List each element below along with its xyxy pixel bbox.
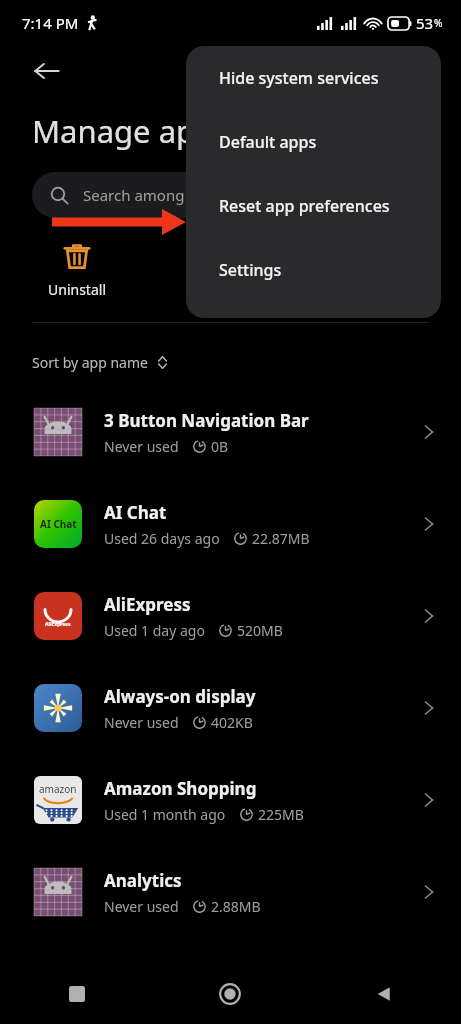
staticText: Never used xyxy=(104,713,179,732)
staticText: Default apps xyxy=(219,131,317,153)
button[interactable]: Reset app preferences xyxy=(186,174,441,238)
staticText: Settings xyxy=(219,259,282,281)
button[interactable]: Uninstall xyxy=(0,240,153,299)
staticText: AliExpress xyxy=(45,621,71,628)
staticText: Used 26 days ago xyxy=(104,529,220,548)
staticText: % xyxy=(434,16,443,30)
staticText: AliExpress xyxy=(104,593,191,616)
button[interactable]: 3 Button Navigation Bar xyxy=(0,386,461,478)
button[interactable]: Hide system services xyxy=(186,46,441,110)
staticText: 0B xyxy=(211,437,229,456)
button[interactable]: amazon xyxy=(0,754,461,846)
staticText: 225MB xyxy=(258,805,304,824)
staticText: Always-on display xyxy=(104,685,256,708)
staticText: Reset app preferences xyxy=(219,195,390,217)
staticText: 2.88MB xyxy=(211,897,261,916)
button[interactable]: Default apps xyxy=(186,110,441,174)
staticText: Manage apps xyxy=(32,110,230,152)
staticText: Used 1 day ago xyxy=(104,621,205,640)
button[interactable] xyxy=(307,240,461,300)
staticText: 3 Button Navigation Bar xyxy=(104,409,309,432)
button[interactable]: Sort by app name xyxy=(32,353,169,372)
staticText: 402KB xyxy=(211,713,253,732)
button[interactable]: Home xyxy=(153,964,307,1024)
button[interactable]: AliExpress xyxy=(0,570,461,662)
button[interactable]: AI Chat xyxy=(0,478,461,570)
staticText: Never used xyxy=(104,437,179,456)
staticText: Analytics xyxy=(104,869,182,892)
staticText: 520MB xyxy=(237,621,283,640)
staticText: Never used xyxy=(104,897,179,916)
staticText: Used 1 month ago xyxy=(104,805,226,824)
staticText: AI Chat xyxy=(104,501,167,524)
staticText: Amazon Shopping xyxy=(104,777,257,800)
button[interactable]: Recent apps xyxy=(0,964,153,1024)
staticText: Uninstall xyxy=(48,280,106,299)
staticText: 7:14 PM xyxy=(22,13,79,33)
button[interactable]: Always-on display xyxy=(0,662,461,754)
button[interactable]: Back xyxy=(22,46,72,96)
staticText: Sort by app name xyxy=(32,353,148,372)
button[interactable] xyxy=(153,240,307,300)
button[interactable]: Settings xyxy=(186,238,441,302)
button[interactable]: Back xyxy=(307,964,461,1024)
staticText: amazon xyxy=(39,782,77,796)
staticText: Hide system services xyxy=(219,67,379,89)
staticText: Search among 219 apps xyxy=(83,185,252,205)
button[interactable]: Analytics xyxy=(0,846,461,938)
staticText: 22.87MB xyxy=(252,529,310,548)
other: Uninstall xyxy=(61,240,93,272)
staticText: 53 xyxy=(416,13,434,33)
staticText: AI Chat xyxy=(40,517,77,531)
button[interactable]: Search among 219 apps xyxy=(32,172,429,218)
